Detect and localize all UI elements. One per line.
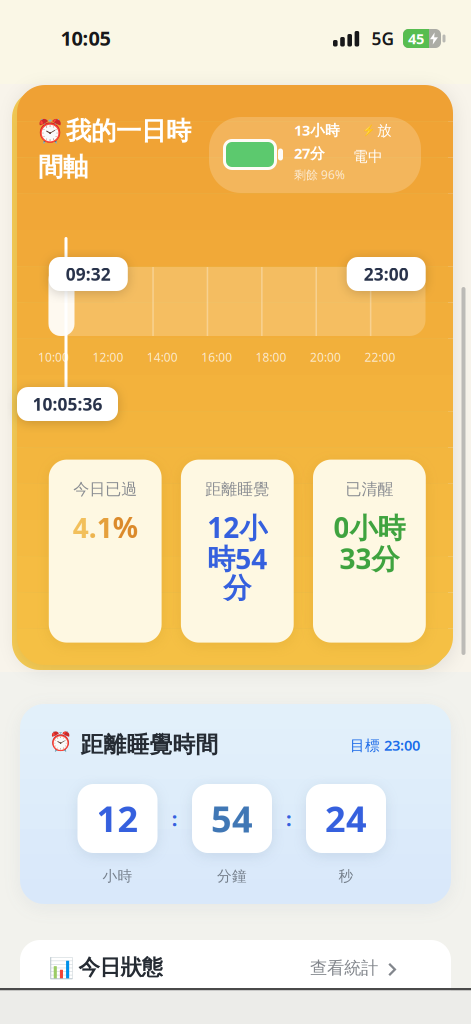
- staticText: 09:32: [66, 262, 111, 285]
- staticText: 16:00: [201, 349, 232, 365]
- staticText: 12:00: [92, 349, 123, 365]
- staticText: %: [113, 509, 138, 546]
- staticText: 已清醒: [345, 479, 393, 499]
- staticText: 33分: [339, 540, 399, 577]
- staticText: 今日已過: [73, 479, 137, 499]
- staticText: 今日狀態: [78, 954, 162, 981]
- staticText: :: [172, 805, 178, 832]
- staticText: 24: [325, 795, 367, 842]
- staticText: 13小時: [294, 120, 340, 140]
- staticText: 4: [73, 509, 89, 546]
- staticText: 12: [96, 795, 138, 842]
- staticText: 查看統計: [310, 957, 378, 979]
- button[interactable]: 📊: [20, 940, 451, 1024]
- staticText: 分: [223, 571, 251, 605]
- staticText: 10:00: [38, 349, 69, 365]
- staticText: .: [89, 509, 97, 546]
- staticText: 分鐘: [217, 867, 247, 885]
- staticText: 27分: [294, 143, 325, 163]
- staticText: 放: [377, 121, 392, 139]
- staticText: 秒: [338, 867, 353, 885]
- staticText: 14:00: [147, 349, 178, 365]
- staticText: 5G: [371, 27, 394, 50]
- staticText: 電中: [353, 147, 383, 165]
- staticText: 📊: [49, 957, 74, 980]
- staticText: ⏰: [36, 118, 64, 144]
- staticText: ⏰: [49, 731, 72, 752]
- staticText: 54: [211, 795, 253, 842]
- button[interactable]: 09:32: [49, 257, 128, 291]
- staticText: 22:00: [364, 349, 395, 365]
- staticText: 1: [97, 509, 113, 546]
- staticText: 間軸: [38, 151, 88, 182]
- staticText: 距離睡覺: [205, 479, 269, 499]
- staticText: 20:00: [310, 349, 341, 365]
- staticText: 45: [408, 29, 424, 48]
- staticText: 18:00: [256, 349, 287, 365]
- staticText: :: [286, 805, 292, 832]
- staticText: 0小時: [333, 509, 405, 546]
- staticText: 時54: [207, 540, 267, 577]
- staticText: 10:05: [60, 25, 110, 51]
- staticText: 23:00: [364, 262, 409, 285]
- staticText: 剩餘 96%: [294, 166, 345, 182]
- button[interactable]: 23:00: [347, 257, 426, 291]
- staticText: 12小: [207, 509, 267, 546]
- staticText: 目標 23:00: [350, 735, 420, 755]
- staticText: ⚡: [362, 124, 375, 137]
- staticText: 小時: [102, 867, 132, 885]
- staticText: 10:05:36: [32, 392, 102, 415]
- staticText: 我的一日時: [66, 115, 191, 146]
- staticText: 距離睡覺時間: [80, 731, 218, 758]
